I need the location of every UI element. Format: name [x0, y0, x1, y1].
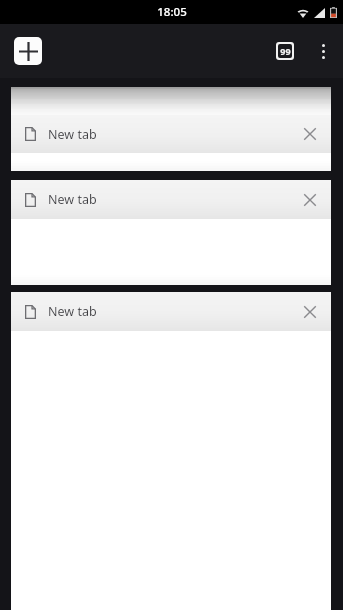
staticText: 18:05 — [157, 4, 187, 20]
staticText: 99 — [280, 45, 291, 57]
button[interactable] — [11, 153, 331, 171]
staticText: New tab — [48, 303, 293, 320]
button[interactable]: Close tab — [293, 295, 327, 329]
button[interactable]: New tab — [11, 115, 331, 153]
button[interactable]: Close tab — [293, 117, 327, 151]
button[interactable]: Tabs: 99 — [267, 33, 303, 69]
button[interactable]: New tab — [11, 180, 331, 219]
button[interactable]: New tab — [11, 292, 331, 331]
button[interactable]: More options — [303, 31, 343, 71]
button[interactable] — [11, 94, 331, 99]
button[interactable] — [11, 87, 331, 89]
button[interactable]: Close tab — [293, 183, 327, 217]
button[interactable] — [11, 89, 331, 94]
button[interactable]: New tab — [14, 37, 42, 65]
staticText: New tab — [48, 126, 293, 143]
button[interactable] — [11, 99, 331, 104]
staticText: New tab — [48, 191, 293, 208]
